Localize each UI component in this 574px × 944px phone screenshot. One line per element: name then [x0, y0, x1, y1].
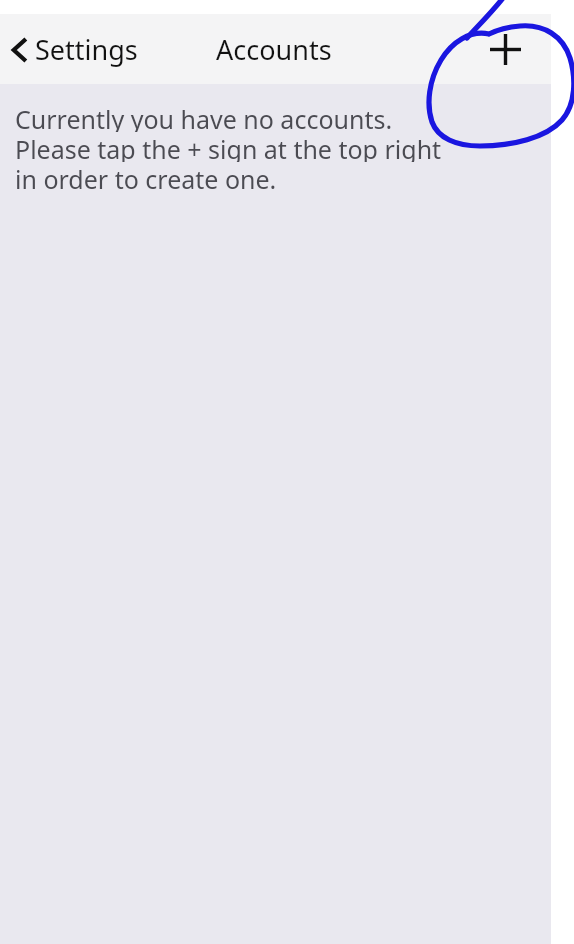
- button[interactable]: Add account: [479, 23, 531, 75]
- staticText: Settings: [35, 31, 138, 68]
- staticText: Currently you have no accounts.: [15, 102, 393, 132]
- staticText: Please tap the + sign at the top right: [15, 132, 442, 162]
- staticText: Accounts: [216, 31, 332, 68]
- button[interactable]: Settings: [4, 23, 142, 76]
- staticText: in order to create one.: [15, 162, 277, 192]
